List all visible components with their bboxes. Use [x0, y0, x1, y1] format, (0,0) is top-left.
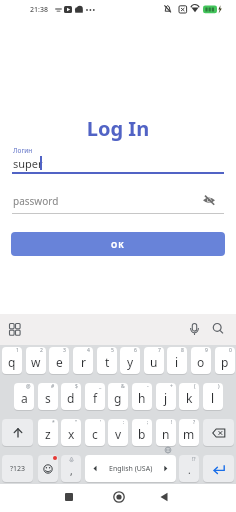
staticText: t	[105, 354, 110, 370]
staticText: 5	[111, 347, 114, 354]
staticText: *	[52, 419, 55, 426]
button[interactable]	[111, 489, 127, 505]
staticText: m	[183, 426, 195, 442]
staticText: super	[13, 156, 43, 171]
staticText: _	[99, 383, 102, 390]
staticText: @	[26, 383, 31, 390]
staticText: &	[121, 383, 125, 390]
button[interactable]: a	[14, 383, 34, 410]
staticText: Логин	[13, 146, 33, 155]
button[interactable]: t	[97, 347, 117, 374]
staticText: 1	[16, 347, 19, 354]
button[interactable]: q	[2, 347, 22, 374]
staticText: q	[8, 354, 16, 370]
button[interactable]: u	[144, 347, 164, 374]
staticText: c	[92, 426, 98, 442]
button[interactable]	[2, 419, 33, 446]
staticText: :	[123, 419, 125, 426]
button[interactable]: b	[132, 419, 152, 446]
button[interactable]	[156, 489, 172, 505]
button[interactable]	[203, 455, 234, 482]
staticText: +	[170, 383, 173, 390]
button[interactable]	[203, 419, 234, 446]
button[interactable]	[202, 193, 216, 207]
button[interactable]: r	[73, 347, 93, 374]
staticText: 9	[205, 347, 208, 354]
staticText: !	[171, 419, 173, 426]
staticText: 8	[181, 347, 184, 354]
staticText: 3	[63, 347, 66, 354]
button[interactable]	[38, 455, 58, 482]
staticText: a	[21, 390, 28, 406]
button[interactable]: w	[26, 347, 46, 374]
staticText: b	[138, 426, 146, 442]
button[interactable]: c	[85, 419, 105, 446]
staticText: #	[51, 383, 55, 390]
staticText: f	[93, 390, 98, 406]
staticText: y	[127, 354, 134, 370]
button[interactable]: password	[12, 190, 224, 212]
button[interactable]: h	[132, 383, 152, 410]
staticText: -	[147, 383, 149, 390]
staticText: password	[13, 194, 59, 208]
button[interactable]: i	[167, 347, 187, 374]
staticText: l	[211, 390, 215, 406]
staticText: x	[68, 426, 75, 442]
button[interactable]: j	[156, 383, 176, 410]
button[interactable]	[61, 489, 77, 505]
button[interactable]: y	[120, 347, 140, 374]
button[interactable]: o	[191, 347, 211, 374]
staticText: 4	[87, 347, 90, 354]
staticText: 21:38	[30, 5, 48, 15]
staticText: z	[45, 426, 51, 442]
staticText: u	[150, 354, 158, 370]
button[interactable]: English (USA)	[85, 455, 176, 482]
button[interactable]: .	[179, 455, 199, 482]
button[interactable]: e	[49, 347, 69, 374]
button[interactable]: ?123	[2, 455, 33, 482]
staticText: r	[81, 354, 86, 370]
staticText: k	[186, 390, 193, 406]
staticText: English (USA)	[109, 464, 153, 474]
button[interactable]: m	[179, 419, 199, 446]
staticText: ?123	[10, 464, 26, 474]
staticText: 2	[40, 347, 43, 354]
button[interactable]: f	[85, 383, 105, 410]
button[interactable]: z	[38, 419, 58, 446]
button[interactable]: g	[108, 383, 128, 410]
staticText: i	[175, 354, 179, 370]
staticText: g	[114, 390, 122, 406]
button[interactable]: s	[38, 383, 58, 410]
staticText: 0	[229, 347, 232, 354]
staticText: Log In	[0, 115, 236, 142]
staticText: o	[197, 354, 205, 370]
staticText: j	[164, 390, 168, 406]
staticText: v	[115, 426, 122, 442]
staticText: )	[218, 383, 220, 390]
staticText: "	[75, 419, 78, 426]
staticText: (	[194, 383, 196, 390]
staticText: ОК	[111, 239, 125, 250]
staticText: .	[188, 463, 191, 477]
staticText: p	[221, 354, 229, 370]
button[interactable]: l	[203, 383, 223, 410]
staticText: 7	[158, 347, 161, 354]
button[interactable]: ,	[61, 455, 81, 482]
button[interactable]: k	[179, 383, 199, 410]
staticText: $	[75, 383, 78, 390]
staticText: ?	[193, 419, 196, 426]
button[interactable]: n	[156, 419, 176, 446]
staticText: 6	[134, 347, 137, 354]
staticText: d	[67, 390, 75, 406]
button[interactable]: ОК	[11, 232, 225, 256]
staticText: h	[138, 390, 146, 406]
staticText: e	[56, 354, 63, 370]
button[interactable]: x	[61, 419, 81, 446]
button[interactable]: d	[61, 383, 81, 410]
staticText: '	[100, 419, 102, 426]
staticText: w	[31, 354, 41, 370]
button[interactable]: v	[108, 419, 128, 446]
button[interactable]: p	[215, 347, 235, 374]
staticText: ,	[70, 464, 73, 478]
staticText: ;	[147, 419, 149, 426]
